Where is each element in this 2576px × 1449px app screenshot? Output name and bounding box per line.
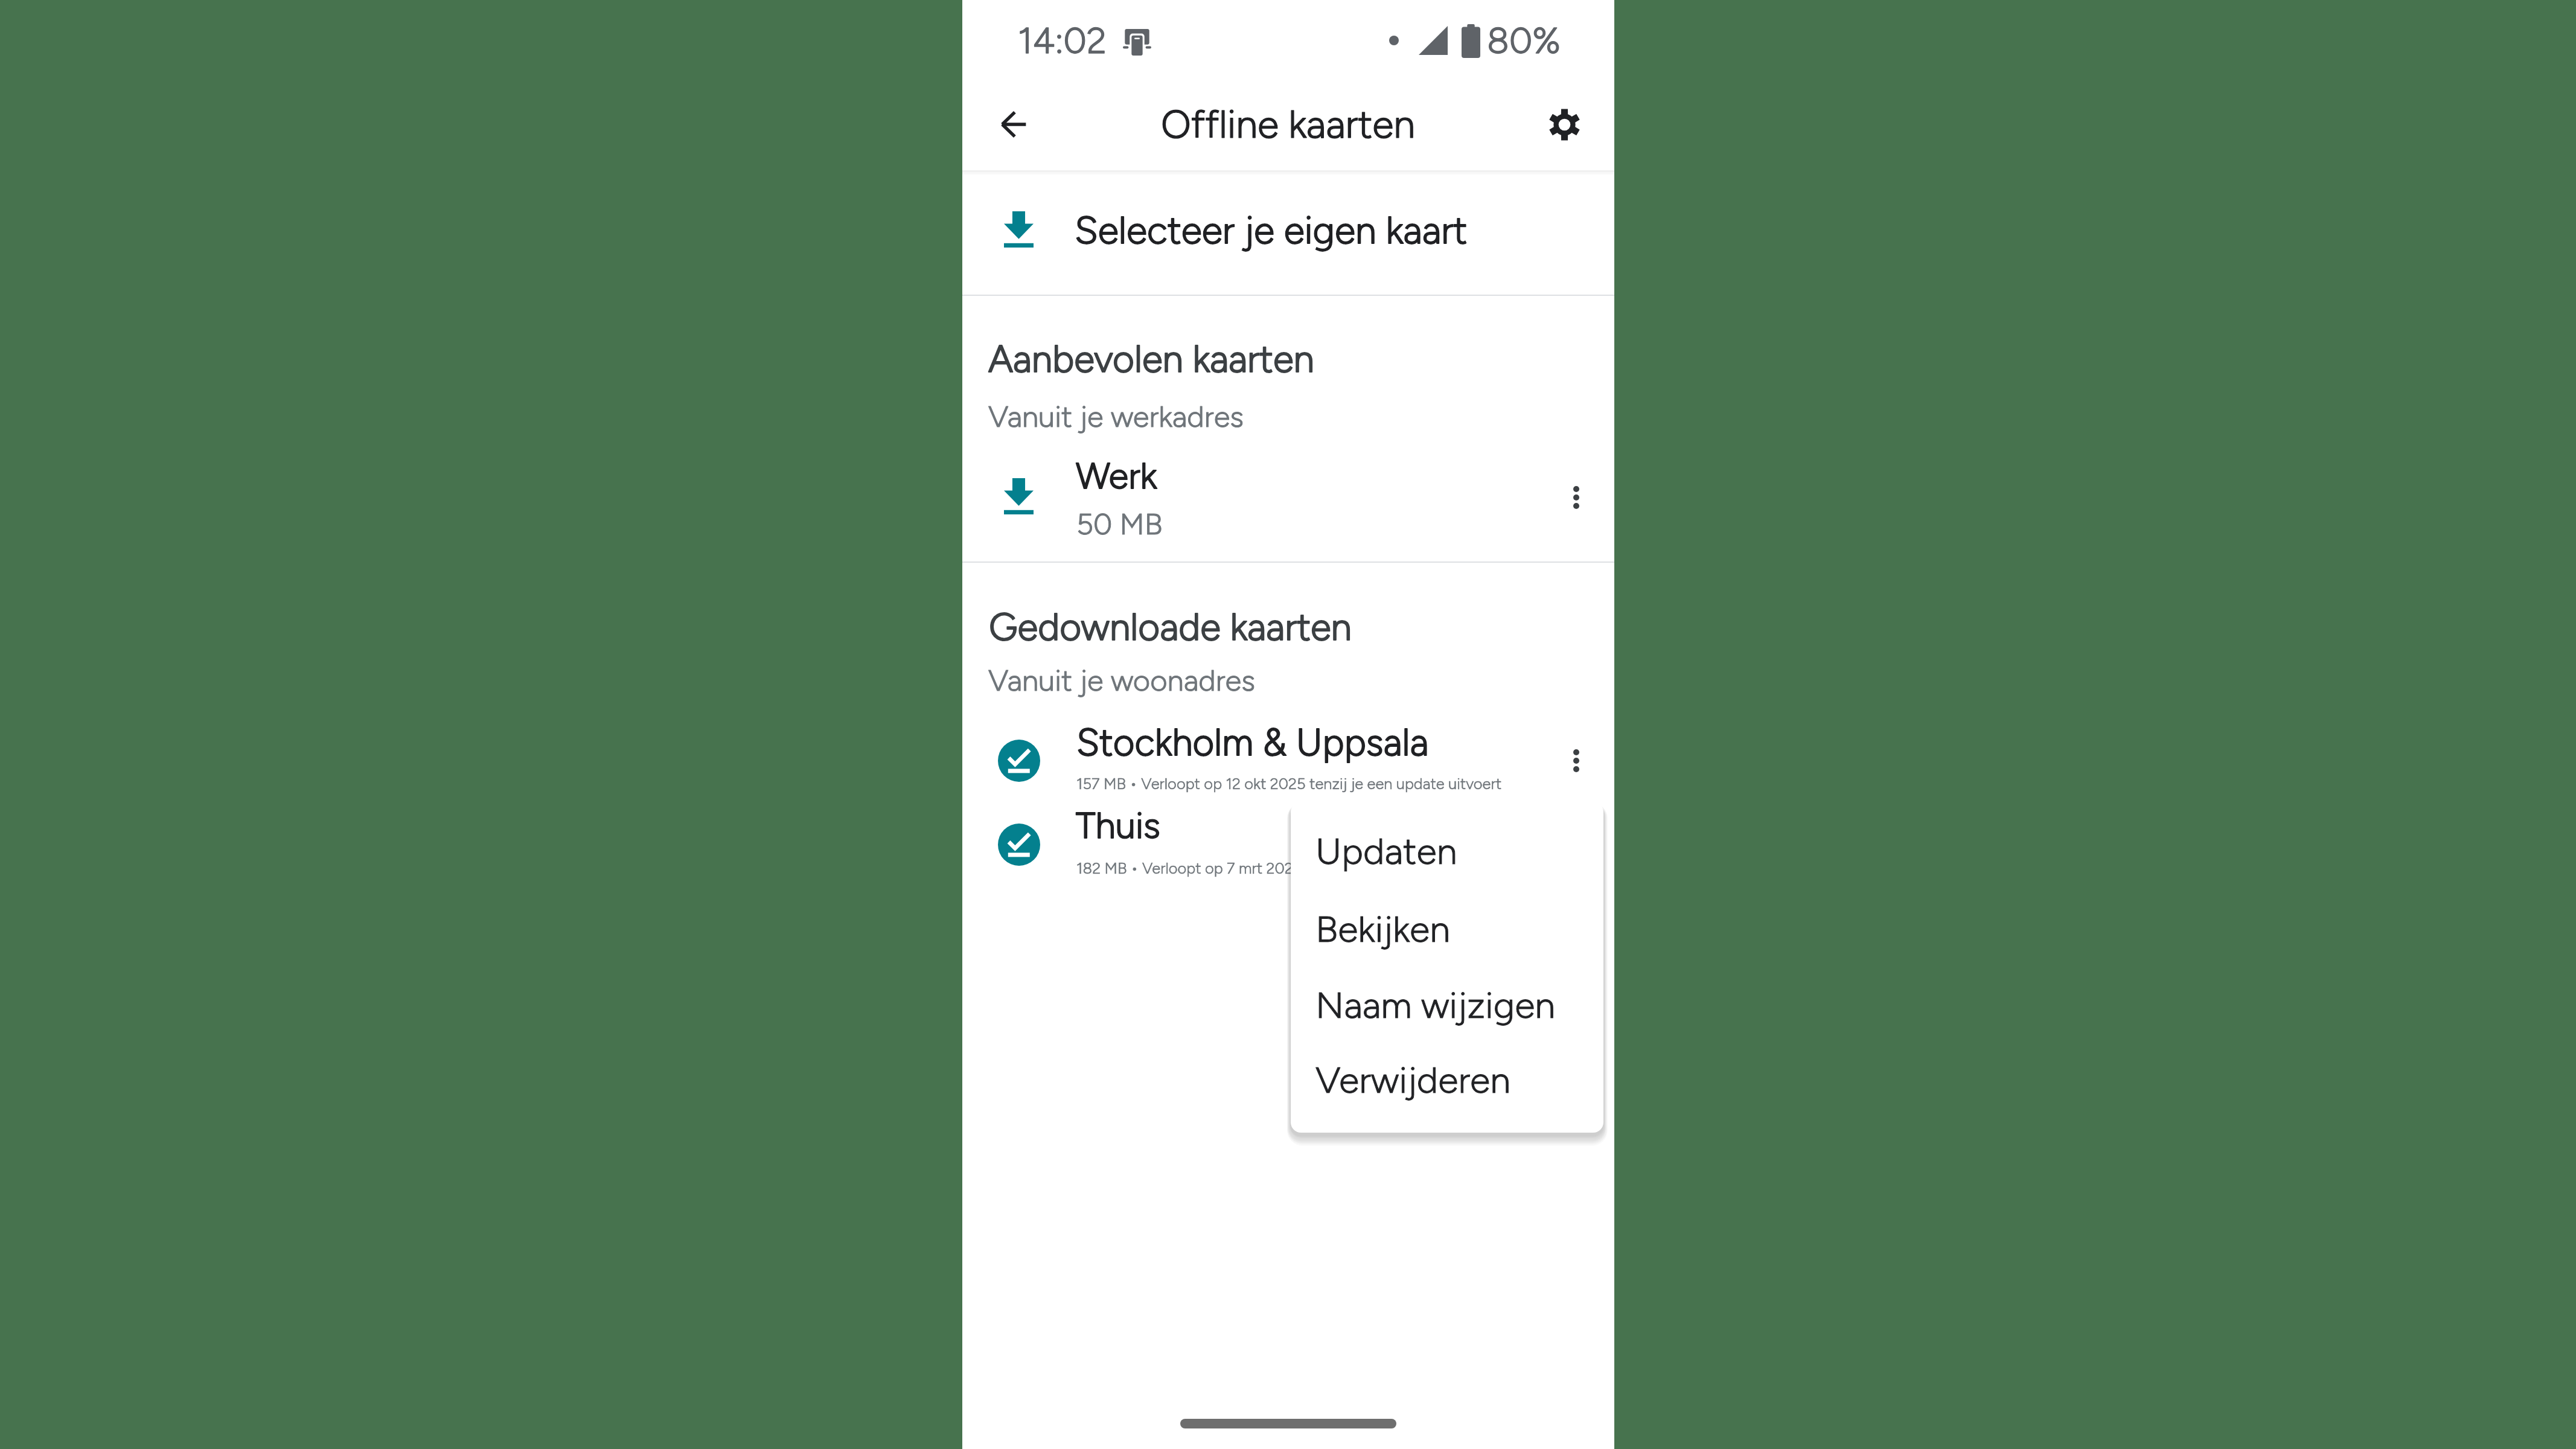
staticText: Updaten [1315,829,1457,873]
staticText: 50 MB [1076,506,1163,542]
staticText: 14:02 [1018,19,1107,62]
staticText: Thuis [1076,804,1161,847]
staticText: 157 MB • Verloopt op 12 okt 2025 tenzij … [1076,775,1502,793]
button[interactable]: More options for Werk [1542,464,1610,531]
staticText: 50 MB [1076,506,1163,542]
staticText: Stockholm & Uppsala [1076,720,1429,764]
staticText: Gedownloade kaarten [989,604,1352,649]
button[interactable] [1291,811,1603,887]
staticText: Vanuit je woonadres [988,662,1256,698]
staticText: Offline kaarten [1161,101,1416,148]
button[interactable]: Settings [1527,87,1602,162]
staticText: Stockholm & Uppsala [1076,720,1429,764]
button[interactable] [1291,965,1603,1041]
staticText: 80% [1487,19,1561,62]
staticText: Selecteer je eigen kaart [1075,207,1468,252]
staticText: 182 MB • Verloopt op 7 mrt 2026 [1076,859,1302,878]
staticText: Aanbevolen kaarten [988,336,1314,381]
staticText: Selecteer je eigen kaart [1075,207,1468,252]
staticText: Thuis [1076,804,1161,847]
staticText: Vanuit je werkadres [988,398,1244,434]
staticText: Verwijderen [1315,1058,1510,1102]
staticText: 182 MB • Verloopt op 7 mrt 2026 [1076,859,1302,878]
staticText: Werk [1076,454,1157,497]
staticText: 14:02 [1018,19,1107,62]
staticText: Naam wijzigen [1315,983,1556,1027]
staticText: Updaten [1315,829,1457,873]
button[interactable] [962,803,1614,889]
button[interactable] [962,174,1614,295]
staticText: Vanuit je woonadres [988,662,1256,698]
staticText: Gedownloade kaarten [989,604,1352,649]
staticText: Verwijderen [1315,1058,1510,1102]
button[interactable]: More options for Stockholm and Uppsala [1542,727,1610,795]
staticText: 157 MB • Verloopt op 12 okt 2025 tenzij … [1076,775,1502,793]
staticText: Aanbevolen kaarten [988,336,1314,381]
button[interactable] [1291,889,1603,965]
staticText: Naam wijzigen [1315,983,1556,1027]
button[interactable] [962,717,1614,803]
button[interactable] [962,449,1614,551]
staticText: Bekijken [1315,907,1450,951]
staticText: Bekijken [1315,907,1450,951]
staticText: Werk [1076,454,1157,497]
staticText: 80% [1487,19,1561,62]
button[interactable] [1291,1040,1603,1116]
button[interactable]: Back [976,87,1051,162]
staticText: Offline kaarten [1161,101,1416,148]
staticText: Vanuit je werkadres [988,398,1244,434]
